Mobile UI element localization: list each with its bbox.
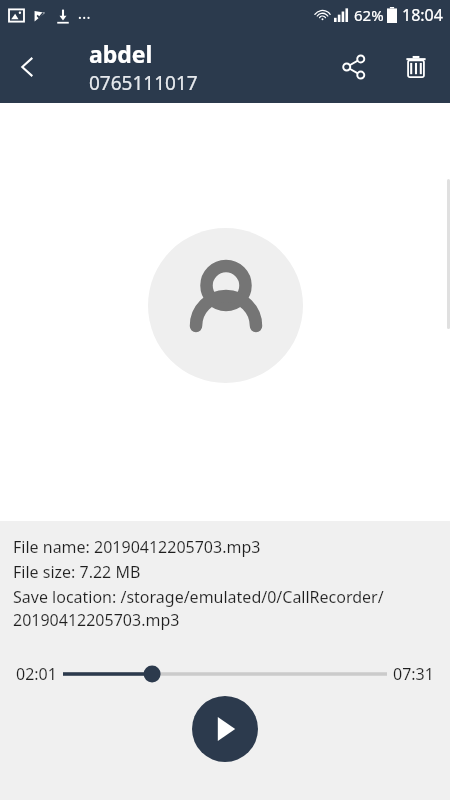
button[interactable]: Play — [192, 696, 258, 762]
staticText: 02:01 — [16, 663, 57, 685]
button[interactable]: Share — [328, 41, 380, 93]
staticText: 0765111017 — [89, 70, 198, 96]
staticText: 62% — [354, 5, 384, 25]
staticText: File size: 7.22 MB — [13, 561, 141, 583]
staticText: File name: 20190412205703.mp3 — [13, 536, 261, 558]
button[interactable]: Delete — [390, 41, 442, 93]
button[interactable]: Seek — [63, 657, 387, 691]
button[interactable]: Back — [0, 39, 56, 95]
staticText: 07:31 — [393, 663, 434, 685]
staticText: Save location: /storage/emulated/0/CallR… — [13, 586, 384, 631]
staticText: abdel — [89, 38, 153, 69]
staticText: 18:04 — [402, 4, 443, 26]
